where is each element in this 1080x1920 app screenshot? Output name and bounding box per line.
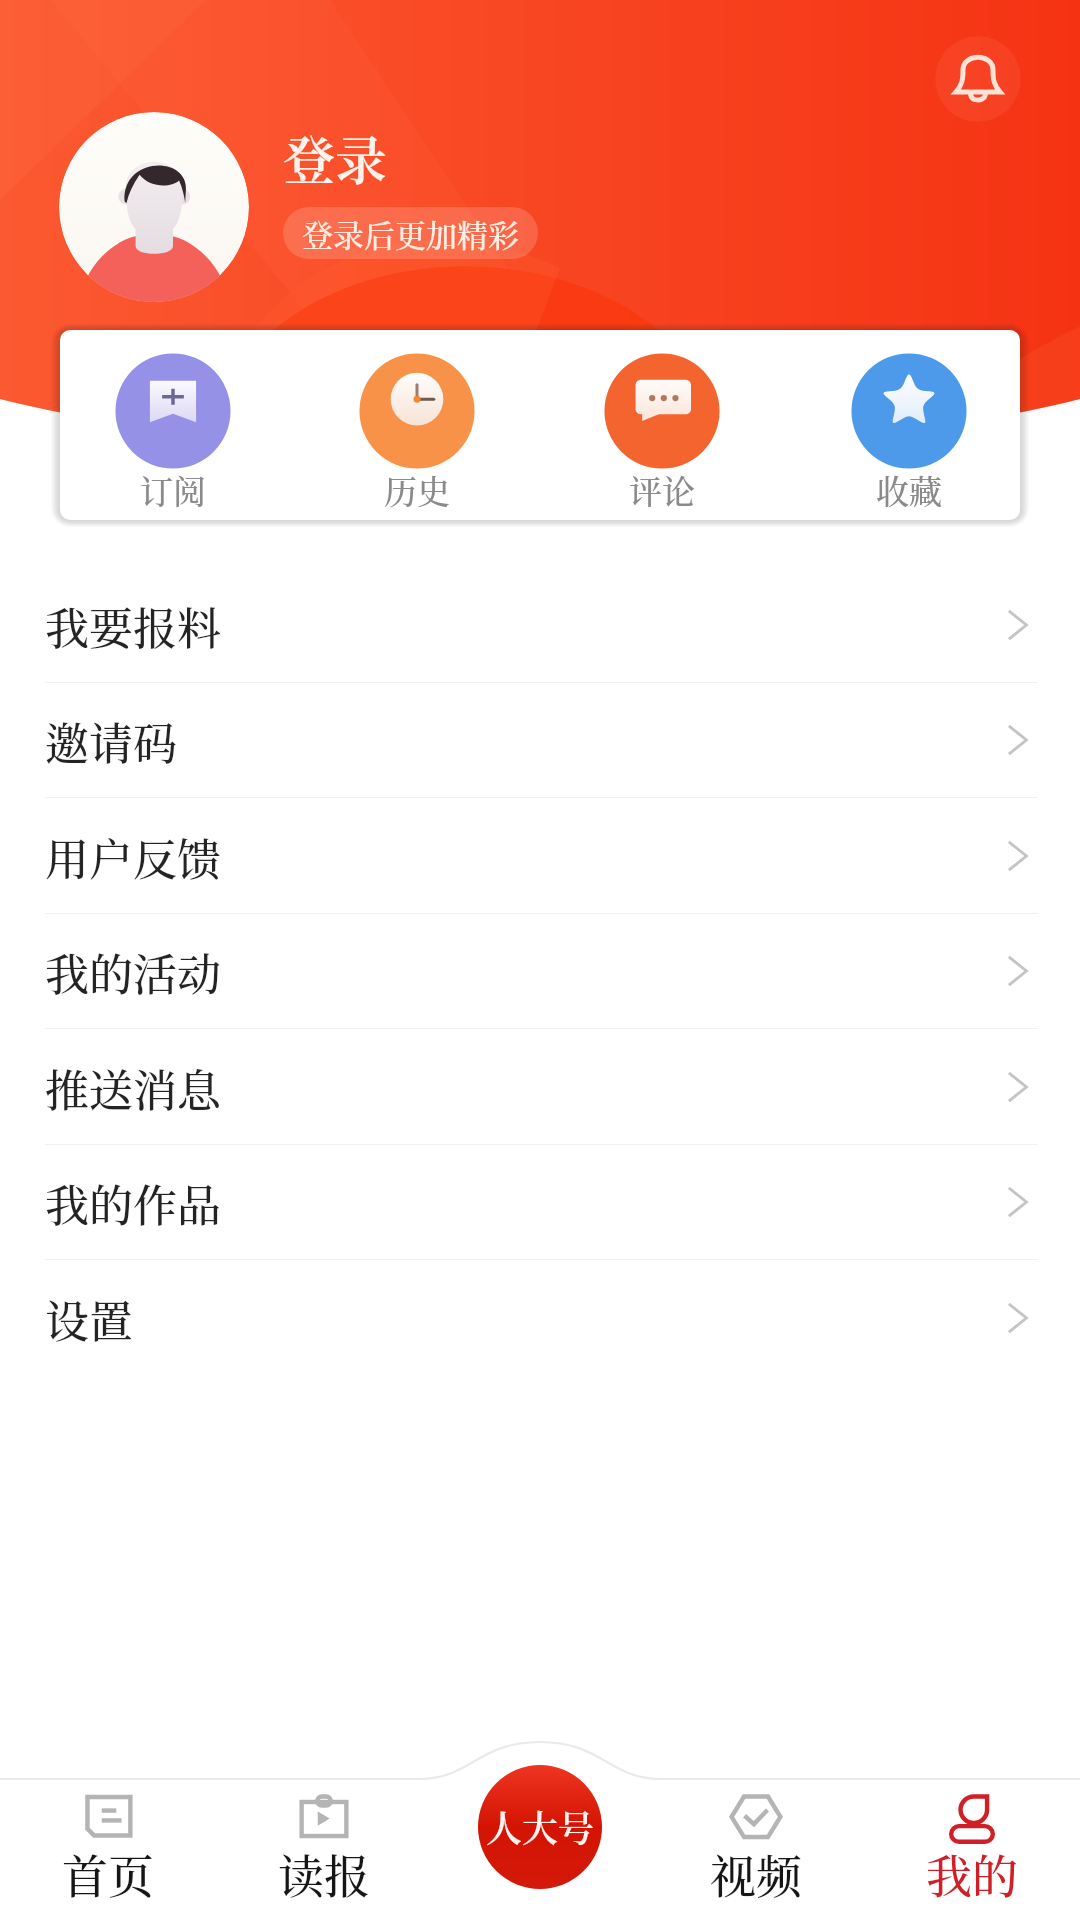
button[interactable]: 人大号 bbox=[478, 1765, 602, 1889]
button[interactable]: 读报 bbox=[216, 1740, 432, 1920]
staticText: 视频 bbox=[710, 1840, 802, 1906]
staticText: 人大号 bbox=[486, 1801, 595, 1853]
button[interactable]: 历史 bbox=[322, 330, 512, 520]
button[interactable]: 我的活动 bbox=[0, 913, 1080, 1029]
staticText: 邀请码 bbox=[45, 709, 177, 772]
button[interactable]: 推送消息 bbox=[0, 1029, 1080, 1145]
button[interactable]: 订阅 bbox=[78, 330, 268, 520]
staticText: 登录后更加精彩 bbox=[302, 211, 519, 256]
staticText: 我的作品 bbox=[45, 1171, 221, 1234]
staticText: 首页 bbox=[62, 1840, 154, 1906]
staticText: 我的 bbox=[926, 1840, 1018, 1906]
button[interactable]: Profile avatar bbox=[59, 112, 249, 302]
button[interactable]: 设置 bbox=[0, 1260, 1080, 1376]
button[interactable]: 登录 bbox=[283, 120, 388, 195]
button[interactable]: 登录后更加精彩 bbox=[283, 207, 538, 259]
staticText: 我要报料 bbox=[45, 594, 221, 657]
button[interactable]: 邀请码 bbox=[0, 682, 1080, 798]
staticText: 历史 bbox=[384, 466, 450, 513]
button[interactable]: 我的 bbox=[864, 1740, 1080, 1920]
button[interactable]: 评论 bbox=[567, 330, 757, 520]
staticText: 用户反馈 bbox=[45, 825, 221, 888]
staticText: 推送消息 bbox=[45, 1056, 221, 1119]
staticText: 读报 bbox=[278, 1840, 370, 1906]
button[interactable]: 我的作品 bbox=[0, 1144, 1080, 1260]
button[interactable]: 用户反馈 bbox=[0, 798, 1080, 914]
button[interactable]: 收藏 bbox=[814, 330, 1004, 520]
staticText: 登录 bbox=[283, 120, 388, 195]
staticText: 我的活动 bbox=[45, 940, 221, 1003]
button[interactable]: 首页 bbox=[0, 1740, 216, 1920]
button[interactable]: 视频 bbox=[648, 1740, 864, 1920]
staticText: 设置 bbox=[45, 1287, 133, 1350]
button[interactable]: 我要报料 bbox=[0, 567, 1080, 683]
button[interactable]: Notifications bbox=[935, 36, 1021, 122]
staticText: 订阅 bbox=[140, 466, 206, 513]
staticText: 收藏 bbox=[876, 466, 942, 513]
staticText: 评论 bbox=[629, 466, 695, 513]
